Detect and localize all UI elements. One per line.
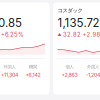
staticText: ▲ — [58, 32, 62, 37]
staticText: 外国人 — [87, 64, 99, 70]
staticText: 2,590.85 — [0, 16, 22, 30]
staticText: +6.25% — [1, 31, 24, 38]
staticText: 個人 — [65, 64, 73, 70]
button[interactable]: コスダック — [53, 2, 100, 94]
staticText: +2,863 — [61, 72, 77, 78]
staticText: -1,204 — [86, 72, 100, 78]
staticText: 外国人 — [3, 64, 15, 70]
button[interactable]: コスピ — [0, 2, 49, 94]
staticText: 32.82 — [63, 31, 81, 38]
staticText: +6,142 — [26, 72, 41, 78]
staticText: 機関 — [29, 64, 37, 70]
staticText: +2.98% — [82, 31, 100, 38]
staticText: 1,135.72 — [58, 16, 100, 30]
staticText: コスダック — [58, 7, 83, 14]
staticText: +11,304 — [1, 72, 18, 78]
